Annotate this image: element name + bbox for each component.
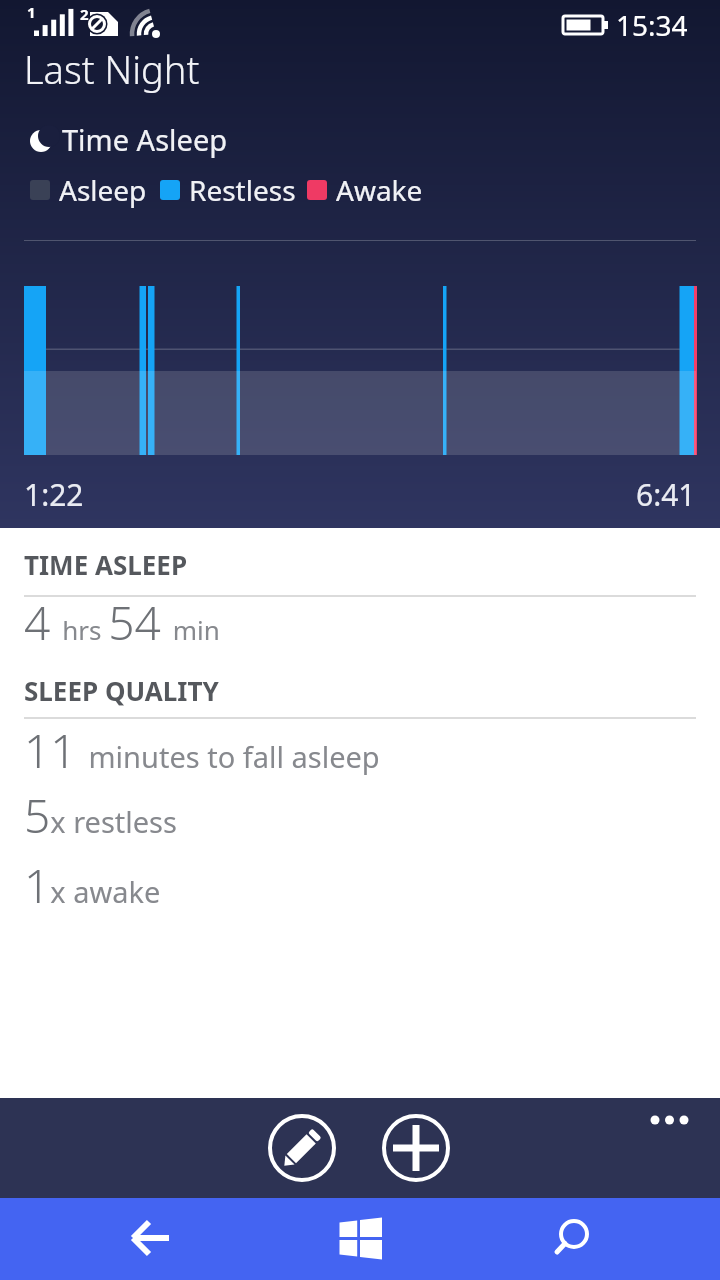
staticText: 11 minutes to fall asleep xyxy=(24,719,380,782)
staticText: 4 hrs 54 min xyxy=(24,591,220,654)
button[interactable] xyxy=(111,1198,191,1280)
staticText: 5x restless xyxy=(24,784,177,847)
button[interactable] xyxy=(266,1112,338,1184)
staticText: 15:34 xyxy=(616,6,688,44)
button[interactable] xyxy=(321,1198,401,1280)
staticText: 2 xyxy=(80,4,89,24)
button[interactable] xyxy=(642,1102,702,1138)
staticText: Restless xyxy=(189,171,296,209)
staticText: Last Night xyxy=(24,43,200,95)
staticText: 1 xyxy=(27,2,36,22)
staticText: Time Asleep xyxy=(62,120,228,159)
staticText: TIME ASLEEP xyxy=(24,547,188,582)
staticText: Asleep xyxy=(59,171,147,209)
staticText: 1x awake xyxy=(24,854,161,917)
staticText: 6:41 xyxy=(636,474,696,515)
button[interactable] xyxy=(534,1198,614,1280)
button[interactable] xyxy=(380,1112,452,1184)
staticText: SLEEP QUALITY xyxy=(24,673,219,708)
staticText: 1:22 xyxy=(24,474,84,515)
staticText: Awake xyxy=(336,171,423,209)
